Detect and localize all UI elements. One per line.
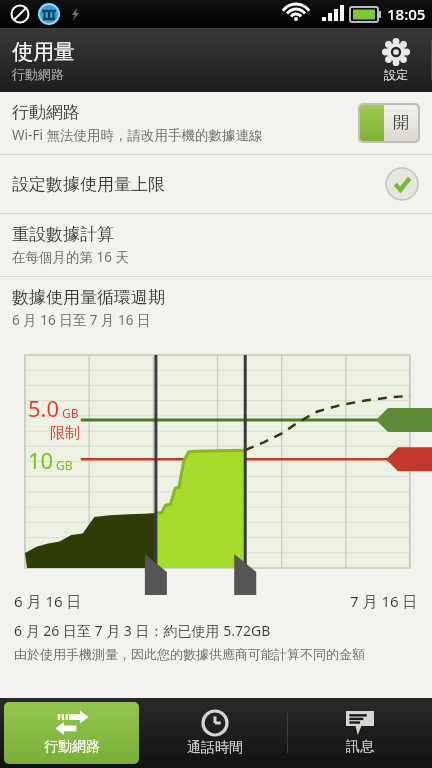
staticText: 行動網路: [12, 66, 64, 82]
staticText: 18:05: [387, 4, 426, 24]
button[interactable]: 設定數據使用量上限: [0, 155, 432, 213]
staticText: 6 月 16 日: [14, 591, 82, 611]
staticText: 通話時間: [187, 739, 243, 757]
staticText: 設定數據使用量上限: [12, 174, 165, 195]
staticText: 數據使用量循環週期: [12, 287, 165, 308]
button[interactable]: 通話時間: [143, 698, 287, 768]
staticText: 設定: [384, 67, 408, 82]
button[interactable]: 行動網路: [0, 92, 432, 154]
button[interactable]: 已設定上限: [384, 166, 420, 202]
staticText: 7 月 16 日: [350, 591, 418, 611]
staticText: GB: [56, 457, 73, 473]
staticText: 行動網路: [44, 738, 100, 756]
button[interactable]: 訊息: [288, 698, 432, 768]
staticText: 行動網路: [12, 102, 80, 123]
staticText: 在每個月的第 16 天: [12, 248, 129, 266]
staticText: 6 月 16 日至 7 月 16 日: [12, 311, 151, 329]
button[interactable]: 行動網路開關: [360, 105, 418, 141]
staticText: 5.0: [28, 393, 60, 423]
staticText: 限制: [50, 424, 80, 443]
staticText: 開: [393, 113, 409, 133]
button[interactable]: 數據使用量循環週期: [0, 277, 432, 339]
staticText: GB: [62, 405, 79, 421]
staticText: 訊息: [346, 738, 374, 756]
staticText: 10: [28, 445, 54, 475]
button[interactable]: 設定: [360, 28, 432, 92]
button[interactable]: 重設數據計算: [0, 214, 432, 276]
staticText: 由於使用手機測量，因此您的數據供應商可能計算不同的金額: [14, 646, 365, 662]
staticText: 重設數據計算: [12, 224, 114, 245]
staticText: 6 月 26 日至 7 月 3 日：約已使用 5.72GB: [14, 621, 271, 640]
button[interactable]: 行動網路: [4, 702, 139, 764]
staticText: Wi-Fi 無法使用時，請改用手機的數據連線: [12, 126, 263, 144]
staticText: 使用量: [12, 39, 75, 65]
